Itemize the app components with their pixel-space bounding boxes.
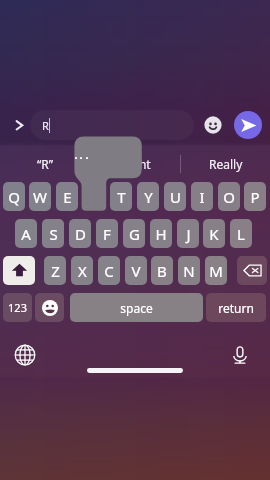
button[interactable]: Shift — [3, 256, 35, 285]
button[interactable]: F — [96, 219, 118, 248]
button[interactable]: Really — [181, 146, 270, 182]
button[interactable]: Emoji keyboard — [35, 293, 64, 322]
button[interactable]: return — [206, 293, 266, 322]
staticText: Right — [121, 156, 151, 172]
staticText: Q — [8, 187, 20, 207]
staticText: E — [63, 187, 72, 207]
staticText: space — [120, 300, 153, 316]
staticText: L — [237, 224, 245, 244]
button[interactable]: R — [30, 110, 194, 140]
button[interactable]: Emoji — [204, 116, 222, 134]
button[interactable]: D — [69, 219, 91, 248]
button[interactable]: X — [71, 256, 93, 285]
staticText: Y — [144, 187, 153, 207]
staticText: I — [199, 187, 205, 207]
staticText: K — [209, 224, 219, 244]
button[interactable]: Backspace — [237, 256, 267, 285]
button[interactable]: space — [70, 293, 203, 322]
button[interactable]: W — [29, 182, 51, 211]
button[interactable]: J — [177, 219, 199, 248]
button[interactable]: 123 — [3, 293, 32, 322]
button[interactable]: I — [191, 182, 213, 211]
button[interactable]: S — [42, 219, 64, 248]
button[interactable]: Right — [91, 146, 180, 182]
staticText: B — [157, 261, 167, 281]
button[interactable]: N — [178, 256, 200, 285]
button[interactable]: A — [15, 219, 37, 248]
staticText: A — [21, 224, 31, 244]
staticText: C — [104, 261, 114, 281]
button[interactable]: O — [218, 182, 240, 211]
staticText: U — [170, 187, 181, 207]
button[interactable]: B — [151, 256, 173, 285]
staticText: X — [78, 261, 87, 281]
button[interactable]: Change keyboard language — [14, 344, 36, 366]
button[interactable]: “R” — [0, 146, 90, 182]
staticText: J — [186, 224, 191, 244]
staticText: N — [183, 261, 195, 281]
button[interactable]: H — [150, 219, 172, 248]
button[interactable]: G — [123, 219, 145, 248]
button[interactable]: Expand toolbar — [11, 114, 33, 136]
staticText: M — [209, 261, 223, 281]
staticText: return — [218, 300, 254, 316]
staticText: Really — [209, 156, 243, 172]
staticText: “R” — [37, 156, 54, 172]
staticText: Z — [51, 261, 60, 281]
staticText: G — [129, 224, 140, 244]
button[interactable]: P — [244, 182, 266, 211]
button[interactable]: Q — [3, 182, 25, 211]
staticText: O — [223, 187, 235, 207]
button[interactable]: U — [164, 182, 186, 211]
staticText: V — [131, 261, 141, 281]
button[interactable]: Z — [44, 256, 66, 285]
button[interactable]: C — [98, 256, 120, 285]
button[interactable]: E — [56, 182, 78, 211]
button[interactable]: Y — [137, 182, 159, 211]
staticText: 123 — [8, 300, 27, 315]
staticText: T — [117, 187, 126, 207]
staticText: P — [250, 187, 260, 207]
button[interactable]: K — [203, 219, 225, 248]
staticText: W — [33, 187, 47, 207]
button[interactable]: Voice input — [229, 344, 251, 366]
button[interactable]: Send — [234, 111, 262, 139]
staticText: D — [75, 224, 86, 244]
button[interactable]: L — [230, 219, 252, 248]
staticText: R — [42, 118, 49, 133]
button[interactable]: V — [125, 256, 147, 285]
button[interactable]: T — [110, 182, 132, 211]
button[interactable]: M — [205, 256, 227, 285]
staticText: F — [103, 224, 111, 244]
staticText: H — [155, 224, 167, 244]
staticText: S — [49, 224, 58, 244]
